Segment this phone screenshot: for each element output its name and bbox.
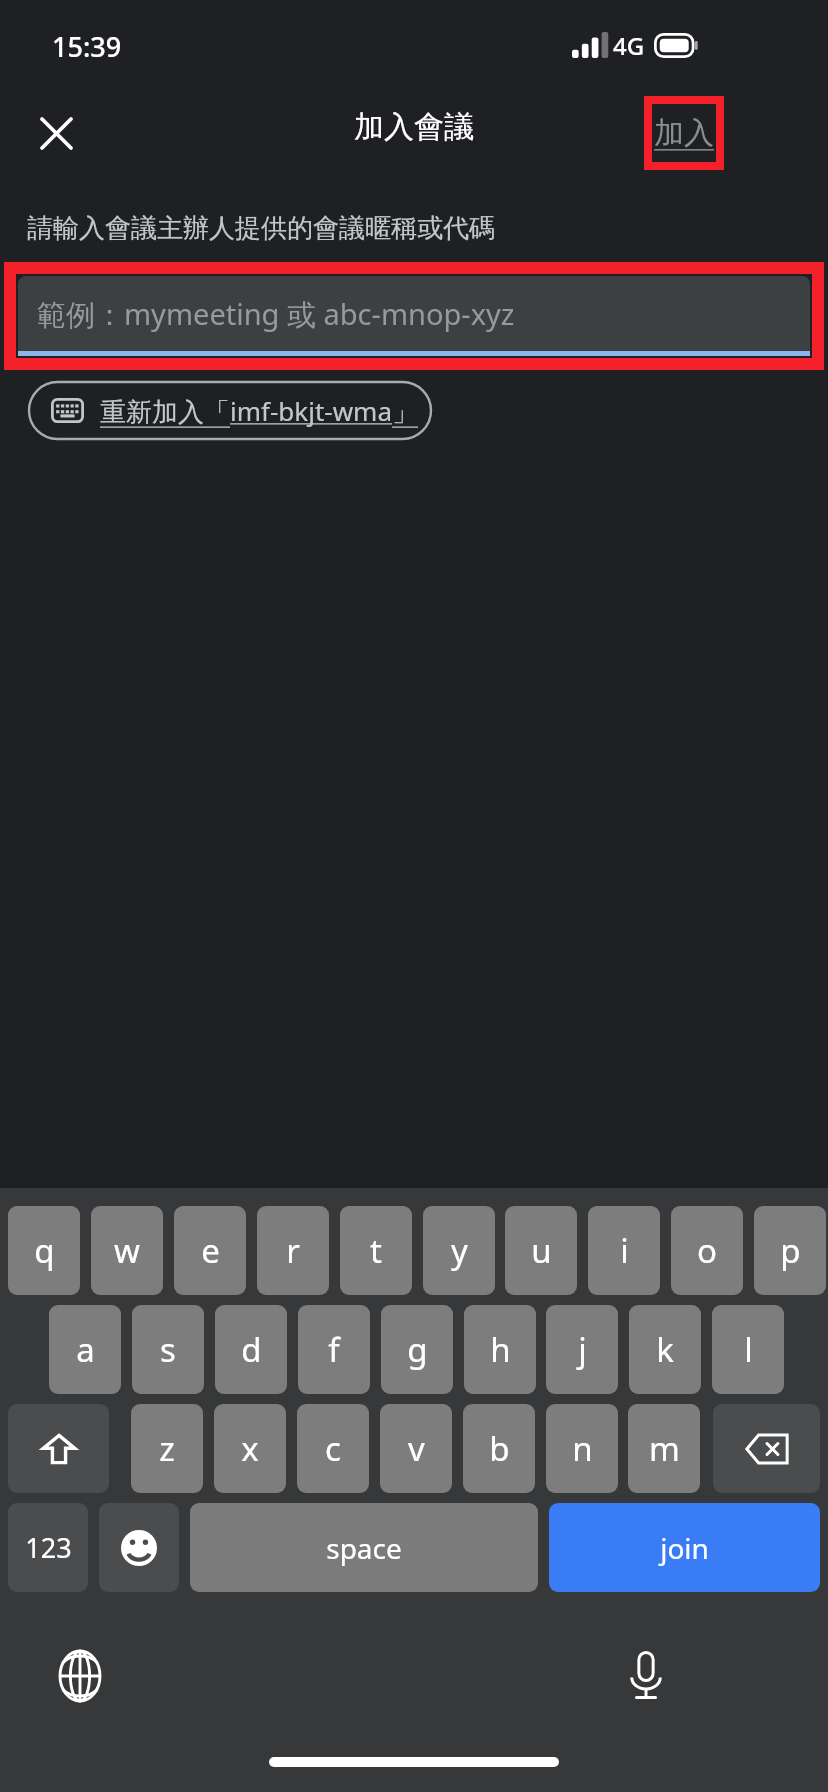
button[interactable]: 123 <box>8 1503 88 1592</box>
button[interactable]: Emoji <box>99 1503 179 1592</box>
staticText: w <box>114 1228 140 1273</box>
staticText: s <box>160 1327 176 1372</box>
button[interactable]: Backspace <box>713 1404 820 1493</box>
staticText: u <box>531 1228 552 1273</box>
button[interactable]: n <box>546 1404 618 1493</box>
staticText: a <box>76 1327 95 1372</box>
staticText: q <box>34 1228 55 1273</box>
staticText: t <box>370 1228 382 1273</box>
staticText: n <box>572 1426 593 1471</box>
staticText: d <box>241 1327 262 1372</box>
button[interactable]: v <box>380 1404 452 1493</box>
staticText: j <box>578 1327 587 1372</box>
staticText: 123 <box>25 1529 72 1566</box>
staticText: c <box>325 1426 341 1471</box>
button[interactable]: u <box>505 1206 577 1295</box>
staticText: 範例：mymeeting 或 abc-mnop-xyz <box>37 294 515 334</box>
staticText: 4G <box>613 29 645 61</box>
button[interactable]: j <box>546 1305 618 1394</box>
button[interactable]: a <box>49 1305 121 1394</box>
button[interactable]: t <box>340 1206 412 1295</box>
staticText: l <box>744 1327 753 1372</box>
staticText: e <box>201 1228 220 1273</box>
button[interactable]: f <box>298 1305 370 1394</box>
staticText: 請輸入會議主辦人提供的會議暱稱或代碼 <box>27 212 495 245</box>
staticText: o <box>697 1228 717 1273</box>
button[interactable]: p <box>754 1206 826 1295</box>
button[interactable]: space <box>190 1503 538 1592</box>
staticText: v <box>408 1426 425 1471</box>
staticText: 加入會議 <box>354 108 474 146</box>
button[interactable]: 重新加入「imf-bkjt-wma」 <box>29 382 431 439</box>
staticText: z <box>159 1426 175 1471</box>
button[interactable]: r <box>257 1206 329 1295</box>
staticText: 重新加入「imf-bkjt-wma」 <box>100 393 419 429</box>
staticText: join <box>660 1529 709 1567</box>
button[interactable]: y <box>423 1206 495 1295</box>
staticText: b <box>489 1426 510 1471</box>
button[interactable]: s <box>132 1305 204 1394</box>
staticText: m <box>649 1426 680 1471</box>
button[interactable]: l <box>712 1305 784 1394</box>
staticText: y <box>451 1228 468 1273</box>
button[interactable]: w <box>91 1206 163 1295</box>
button[interactable]: d <box>215 1305 287 1394</box>
button[interactable]: join <box>549 1503 820 1592</box>
button[interactable]: h <box>464 1305 536 1394</box>
button[interactable]: i <box>588 1206 660 1295</box>
button[interactable]: m <box>628 1404 700 1493</box>
button[interactable]: 加入 <box>648 100 720 166</box>
button[interactable]: Shift <box>8 1404 109 1493</box>
staticText: r <box>286 1228 300 1273</box>
staticText: x <box>241 1426 259 1471</box>
button[interactable]: o <box>671 1206 743 1295</box>
button[interactable]: Change keyboard language <box>44 1640 116 1712</box>
staticText: p <box>780 1228 801 1273</box>
button[interactable]: q <box>8 1206 80 1295</box>
button[interactable]: b <box>463 1404 535 1493</box>
staticText: h <box>490 1327 511 1372</box>
button[interactable]: k <box>629 1305 701 1394</box>
staticText: k <box>656 1327 674 1372</box>
staticText: 15:39 <box>52 28 122 65</box>
button[interactable]: g <box>381 1305 453 1394</box>
staticText: f <box>328 1327 340 1372</box>
button[interactable]: Close <box>22 99 90 167</box>
staticText: i <box>620 1228 629 1273</box>
staticText: g <box>407 1327 428 1372</box>
button[interactable]: z <box>131 1404 203 1493</box>
button[interactable]: x <box>214 1404 286 1493</box>
button[interactable]: 範例：mymeeting 或 abc-mnop-xyz <box>18 276 810 356</box>
staticText: 加入 <box>654 114 714 152</box>
button[interactable]: Voice input <box>610 1640 682 1712</box>
staticText: space <box>326 1529 402 1567</box>
button[interactable]: c <box>297 1404 369 1493</box>
button[interactable]: e <box>174 1206 246 1295</box>
